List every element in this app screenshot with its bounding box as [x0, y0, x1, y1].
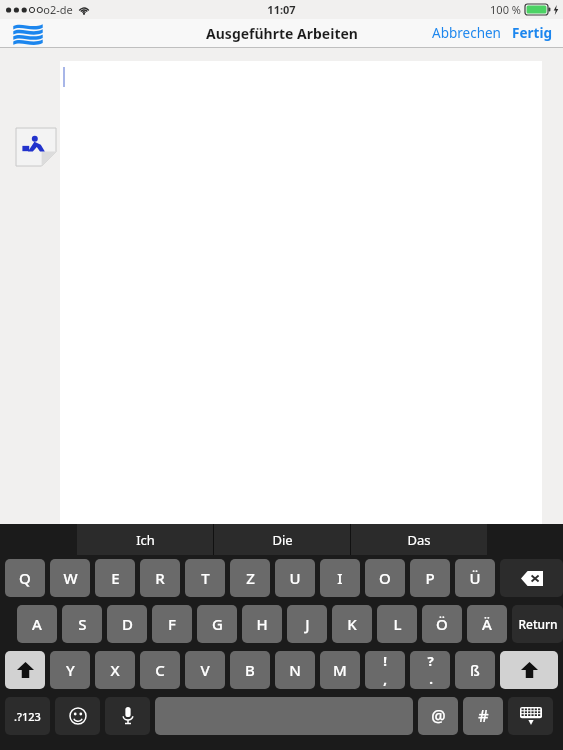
staticText: Ö — [436, 614, 448, 634]
button[interactable]: E — [95, 559, 135, 597]
staticText: P — [425, 568, 435, 588]
button[interactable]: N — [275, 651, 315, 689]
button[interactable]: I — [320, 559, 360, 597]
button[interactable]: P — [410, 559, 450, 597]
staticText: G — [212, 614, 223, 634]
staticText: L — [393, 614, 402, 634]
button[interactable]: J — [287, 605, 327, 643]
staticText: O — [379, 568, 391, 588]
button[interactable]: Tastatur ausblenden — [508, 697, 553, 735]
staticText: ? — [427, 652, 434, 670]
staticText: Die — [272, 531, 293, 549]
staticText: R — [155, 568, 165, 588]
button[interactable]: G — [197, 605, 237, 643]
button[interactable]: W — [50, 559, 90, 597]
button[interactable]: Q — [5, 559, 45, 597]
staticText: S — [78, 614, 87, 634]
button[interactable]: V — [185, 651, 225, 689]
staticText: Y — [66, 660, 75, 680]
button[interactable]: Rücktaste — [500, 559, 563, 597]
button[interactable]: S — [62, 605, 102, 643]
staticText: Q — [19, 568, 31, 588]
staticText: # — [478, 705, 489, 727]
button[interactable]: Abbrechen — [430, 24, 503, 42]
staticText: H — [256, 614, 268, 634]
staticText: D — [122, 614, 133, 634]
staticText: , — [383, 670, 387, 688]
staticText: 100 % — [490, 2, 521, 17]
staticText: U — [289, 568, 301, 588]
staticText: T — [201, 568, 210, 588]
button[interactable]: Ä — [467, 605, 507, 643]
staticText: N — [289, 660, 301, 680]
button[interactable]: Return — [512, 605, 563, 643]
staticText: X — [110, 660, 120, 680]
staticText: Abbrechen — [432, 24, 501, 42]
button[interactable]: Z — [230, 559, 270, 597]
staticText: F — [168, 614, 176, 634]
staticText: Ausgeführte Arbeiten — [206, 24, 358, 43]
button[interactable]: .?123 — [5, 697, 50, 735]
button[interactable]: @ — [418, 697, 458, 735]
staticText: J — [305, 614, 310, 634]
button[interactable]: D — [107, 605, 147, 643]
button[interactable]: Y — [50, 651, 90, 689]
button[interactable]: X — [95, 651, 135, 689]
button[interactable]: A — [17, 605, 57, 643]
staticText: . — [429, 670, 433, 688]
button[interactable]: Fertig — [510, 24, 554, 42]
staticText: C — [155, 660, 165, 680]
staticText: K — [347, 614, 357, 634]
button[interactable]: # — [463, 697, 503, 735]
button[interactable]: K — [332, 605, 372, 643]
button[interactable]: Logo — [12, 22, 44, 44]
staticText: Return — [518, 616, 558, 632]
button[interactable]: Ü — [455, 559, 495, 597]
button[interactable]: H — [242, 605, 282, 643]
button[interactable]: Die — [214, 524, 350, 555]
staticText: M — [333, 660, 347, 680]
button[interactable]: Anhang — [16, 128, 56, 166]
button[interactable]: M — [320, 651, 360, 689]
button[interactable]: ? — [410, 651, 450, 689]
button[interactable]: R — [140, 559, 180, 597]
staticText: o2-de — [43, 2, 73, 17]
button[interactable]: Ö — [422, 605, 462, 643]
staticText: I — [337, 568, 343, 588]
button[interactable]: Leertaste — [155, 697, 413, 735]
button[interactable]: B — [230, 651, 270, 689]
staticText: Ä — [482, 614, 492, 634]
button[interactable]: Das — [351, 524, 487, 555]
button[interactable]: T — [185, 559, 225, 597]
button[interactable]: ß — [455, 651, 495, 689]
button[interactable]: F — [152, 605, 192, 643]
button[interactable]: Diktat — [105, 697, 150, 735]
staticText: Ü — [469, 568, 481, 588]
button[interactable]: Ich — [77, 524, 213, 555]
staticText: Fertig — [512, 24, 552, 42]
staticText: E — [111, 568, 120, 588]
button[interactable]: L — [377, 605, 417, 643]
button[interactable]: U — [275, 559, 315, 597]
staticText: A — [32, 614, 42, 634]
staticText: V — [200, 660, 210, 680]
staticText: Das — [407, 531, 431, 549]
staticText: 11:07 — [267, 2, 296, 17]
button[interactable]: Emoji — [55, 697, 100, 735]
staticText: @ — [431, 705, 446, 727]
button[interactable]: O — [365, 559, 405, 597]
staticText: W — [63, 568, 78, 588]
staticText: B — [245, 660, 255, 680]
button[interactable]: Umschalt — [5, 651, 45, 689]
button[interactable]: ! — [365, 651, 405, 689]
staticText: Z — [246, 568, 255, 588]
staticText: ß — [470, 660, 480, 680]
staticText: ! — [383, 652, 387, 670]
button[interactable]: C — [140, 651, 180, 689]
button[interactable]: Umschalt — [500, 651, 558, 689]
staticText: Ich — [136, 531, 155, 549]
staticText: .?123 — [14, 709, 41, 724]
